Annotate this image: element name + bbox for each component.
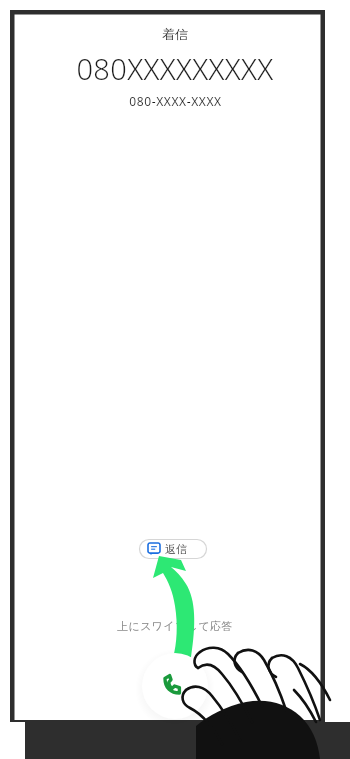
staticText: 上にスワイプして応答 — [117, 619, 233, 633]
staticText: 080-XXXX-XXXX — [129, 93, 222, 109]
staticText: 着信 — [162, 26, 188, 42]
staticText: 返信 — [165, 542, 187, 556]
staticText: 080XXXXXXXXX — [76, 49, 274, 88]
button[interactable]: Answer call — [163, 674, 183, 694]
button[interactable]: 返信 — [139, 539, 196, 559]
